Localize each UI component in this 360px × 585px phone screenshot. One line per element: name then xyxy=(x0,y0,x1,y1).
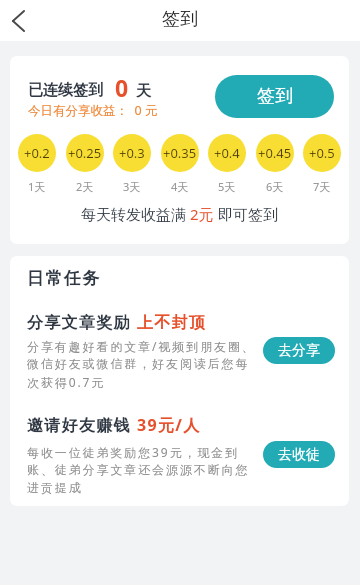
button[interactable]: 去分享 xyxy=(263,337,335,364)
staticText: 6天 xyxy=(266,179,284,194)
staticText: 签到 xyxy=(162,8,198,31)
staticText: 天 xyxy=(136,82,151,101)
staticText: 3天 xyxy=(123,179,141,194)
staticText: 4天 xyxy=(171,179,189,194)
staticText: 2元 xyxy=(190,204,214,224)
staticText: 日常任务 xyxy=(26,268,100,289)
staticText: 签到 xyxy=(257,85,293,108)
staticText: 去收徒 xyxy=(278,446,320,464)
staticText: 39元/人 xyxy=(137,414,201,436)
staticText: 每天转发收益满 xyxy=(81,204,190,224)
staticText: 7天 xyxy=(313,179,331,194)
button[interactable]: 去收徒 xyxy=(263,441,335,468)
staticText: 邀请好友赚钱 xyxy=(27,414,137,436)
staticText: 已连续签到 xyxy=(28,81,103,100)
staticText: 上不封顶 xyxy=(137,313,207,333)
staticText: +0.4 xyxy=(214,144,240,162)
staticText: +0.25 xyxy=(68,144,102,162)
staticText: 即可签到 xyxy=(214,204,278,224)
staticText: +0.5 xyxy=(309,144,335,162)
staticText: +0.45 xyxy=(258,144,292,162)
staticText: +0.35 xyxy=(163,144,197,162)
button[interactable]: 签到 xyxy=(215,75,334,118)
staticText: 1天 xyxy=(28,179,46,194)
staticText: 分享文章奖励 xyxy=(27,311,137,333)
staticText: 分享有趣好看的文章/视频到朋友圈、 微信好友或微信群，好友阅读后您每 次获得0.… xyxy=(27,338,277,391)
staticText: 2天 xyxy=(76,179,94,194)
button[interactable]: Back xyxy=(2,5,34,37)
staticText: 去分享 xyxy=(278,342,320,360)
staticText: +0.2 xyxy=(24,144,50,162)
staticText: 0 xyxy=(115,72,129,103)
staticText: 每收一位徒弟奖励您39元，现金到 账、徒弟分享文章还会源源不断向您 进贡提成 xyxy=(27,444,277,496)
staticText: 5天 xyxy=(218,179,236,194)
staticText: 今日有分享收益： 0 元 xyxy=(28,102,158,119)
staticText: +0.3 xyxy=(119,144,145,162)
